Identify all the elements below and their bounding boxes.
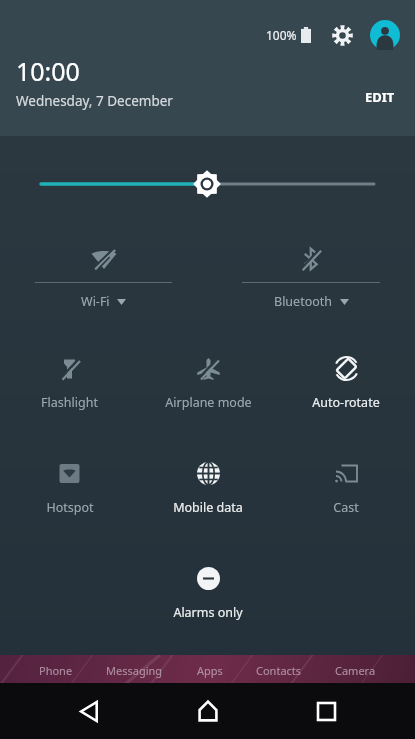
button[interactable]: Airplane mode [139, 340, 277, 445]
button[interactable]: Camera [335, 663, 376, 678]
button[interactable]: EDIT [359, 82, 401, 112]
staticText: Alarms only [173, 604, 243, 621]
button[interactable]: Wi-Fi [0, 232, 207, 340]
staticText: Mobile data [173, 499, 243, 516]
staticText: Flashlight [41, 394, 98, 411]
staticText: Auto-rotate [312, 394, 380, 411]
button[interactable]: Home [178, 683, 238, 739]
staticText: Contacts [256, 663, 302, 678]
button[interactable]: Mobile data [139, 445, 277, 550]
staticText: 10:00 [16, 54, 80, 88]
button[interactable]: Brightness [0, 136, 415, 232]
button[interactable]: Settings [327, 20, 357, 50]
button[interactable]: Phone [39, 663, 73, 678]
button[interactable]: User account [369, 19, 401, 51]
staticText: Airplane mode [165, 394, 252, 411]
staticText: Messaging [106, 663, 163, 678]
button[interactable]: 10:00 [16, 54, 80, 88]
button[interactable]: Bluetooth [207, 232, 415, 340]
button[interactable]: Back [59, 683, 119, 739]
button[interactable]: Alarms only [139, 550, 277, 655]
button[interactable]: Recent apps [296, 683, 356, 739]
staticText: Bluetooth [274, 293, 333, 310]
staticText: 100% [266, 27, 297, 43]
button[interactable]: Apps [197, 663, 223, 678]
staticText: Hotspot [46, 499, 94, 516]
button[interactable]: Cast [277, 445, 415, 550]
staticText: Apps [197, 663, 223, 678]
button[interactable]: Contacts [256, 663, 302, 678]
staticText: Wednesday, 7 December [16, 92, 173, 110]
button[interactable]: Messaging [106, 663, 163, 678]
button[interactable]: Hotspot [0, 445, 139, 550]
staticText: Phone [39, 663, 73, 678]
staticText: Cast [333, 499, 359, 516]
staticText: Camera [335, 663, 376, 678]
staticText: EDIT [365, 88, 395, 106]
button[interactable]: Auto-rotate [277, 340, 415, 445]
staticText: Wi-Fi [81, 293, 110, 310]
button[interactable]: Flashlight [0, 340, 139, 445]
